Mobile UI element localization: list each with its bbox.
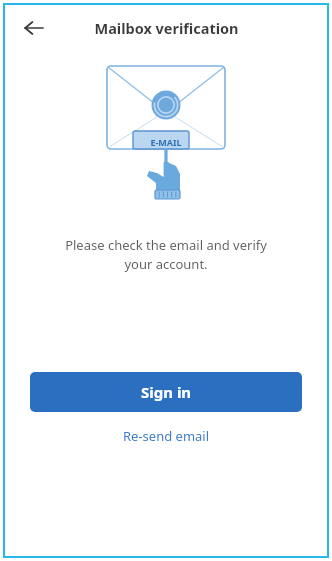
staticText: E-MAIL xyxy=(150,136,182,148)
button[interactable]: Back xyxy=(17,11,51,45)
staticText: Sign in xyxy=(141,382,192,402)
staticText: Mailbox verification xyxy=(94,18,239,38)
staticText: Please check the email and verify your a… xyxy=(33,236,299,273)
staticText: Re-send email xyxy=(123,427,210,445)
button[interactable]: Re-send email xyxy=(113,421,220,451)
button[interactable]: Sign in xyxy=(30,372,302,412)
